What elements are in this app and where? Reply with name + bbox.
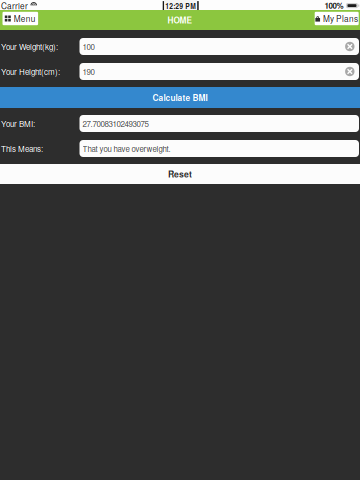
staticText: Carrier bbox=[1, 0, 28, 11]
staticText: Menu bbox=[14, 13, 36, 24]
staticText: Your Height(cm): bbox=[1, 66, 60, 77]
staticText: Your BMI: bbox=[1, 118, 35, 129]
staticText: 100% bbox=[324, 0, 343, 11]
staticText: Reset bbox=[168, 168, 192, 180]
staticText: That you have overweight. bbox=[82, 143, 170, 154]
staticText: Your Weight(kg): bbox=[1, 41, 58, 52]
staticText: 12:29 PM bbox=[165, 0, 196, 11]
staticText: This Means: bbox=[1, 143, 43, 154]
staticText: Calculate BMI bbox=[152, 91, 207, 103]
staticText: 190 bbox=[82, 66, 94, 77]
staticText: My Plans bbox=[323, 13, 358, 24]
button[interactable]: Reset bbox=[0, 164, 360, 184]
staticText: 27.70083102493075 bbox=[82, 118, 148, 129]
staticText: 100 bbox=[82, 41, 94, 52]
button[interactable]: Menu bbox=[2, 12, 38, 25]
button[interactable]: My Plans bbox=[315, 12, 359, 25]
staticText: HOME bbox=[167, 14, 192, 26]
button[interactable]: Calculate BMI bbox=[0, 87, 360, 108]
